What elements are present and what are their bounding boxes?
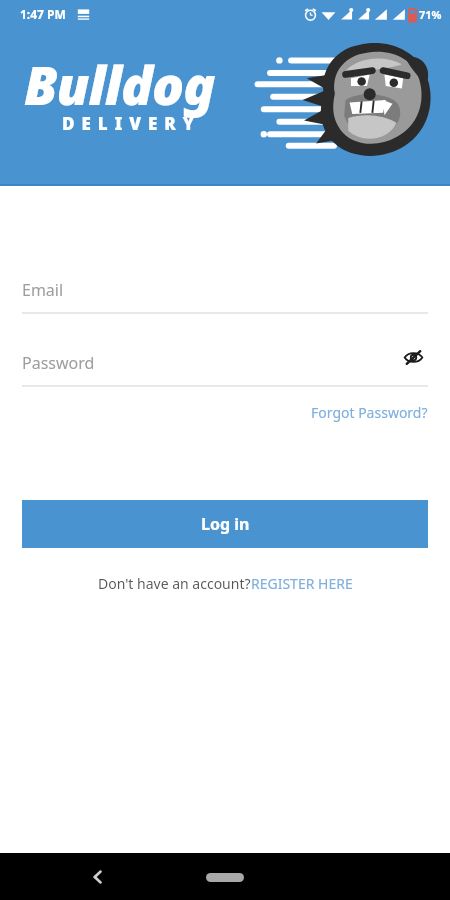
button[interactable]: Back <box>78 857 118 897</box>
staticText: Email <box>22 279 64 301</box>
button[interactable]: Password <box>22 341 428 385</box>
button[interactable]: REGISTER HERE <box>251 572 353 595</box>
button[interactable]: Show password <box>398 342 428 372</box>
staticText: Bulldog <box>24 48 215 120</box>
button[interactable]: Log in <box>22 500 428 548</box>
staticText: Log in <box>201 513 250 535</box>
staticText: DELIVERY <box>62 112 202 135</box>
staticText: 71% <box>419 7 442 22</box>
staticText: Don't have an account? <box>98 574 251 593</box>
staticText: Password <box>22 352 95 374</box>
button[interactable]: Email <box>22 268 428 312</box>
staticText: 1:47 PM <box>20 6 66 22</box>
button[interactable]: Home <box>196 857 254 897</box>
button[interactable]: Forgot Password? <box>311 399 428 426</box>
